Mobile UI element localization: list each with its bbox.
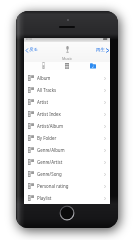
other: List view bbox=[65, 63, 69, 69]
other: Browse folders bbox=[90, 63, 96, 69]
staticText: Personal rating bbox=[37, 183, 69, 189]
button[interactable]: Artist Index bbox=[24, 108, 110, 120]
other: Home bbox=[59, 205, 75, 221]
button[interactable]: Artist/Album bbox=[24, 120, 110, 132]
button[interactable]: 戻る bbox=[26, 47, 38, 53]
other: Now playing device bbox=[66, 46, 69, 53]
staticText: 再生 bbox=[96, 47, 105, 53]
button[interactable]: Album bbox=[24, 72, 110, 84]
staticText: Artist/Album bbox=[37, 123, 64, 129]
button[interactable]: Device bbox=[42, 62, 45, 69]
button[interactable]: Genre/Album bbox=[24, 144, 110, 156]
button[interactable]: 再生 bbox=[96, 47, 109, 53]
staticText: Genre/Artist bbox=[37, 159, 63, 165]
button[interactable]: Browse folders bbox=[90, 63, 96, 69]
staticText: 戻る bbox=[29, 47, 38, 53]
other: Device bbox=[42, 62, 45, 69]
staticText: Genre/Song bbox=[37, 171, 62, 177]
button[interactable]: List view bbox=[65, 63, 69, 69]
staticText: Artist bbox=[37, 99, 49, 105]
staticText: By Folder bbox=[37, 135, 57, 141]
button[interactable]: Genre/Artist bbox=[24, 156, 110, 168]
button[interactable]: By Folder bbox=[24, 132, 110, 144]
staticText: Album bbox=[37, 75, 51, 81]
staticText: Playlist bbox=[37, 195, 52, 201]
staticText: All Tracks bbox=[37, 87, 57, 93]
staticText: Genre/Album bbox=[37, 147, 65, 153]
button[interactable]: Playlist bbox=[24, 192, 110, 204]
button[interactable]: Genre/Song bbox=[24, 168, 110, 180]
staticText: Music bbox=[62, 56, 73, 61]
button[interactable]: Personal rating bbox=[24, 180, 110, 192]
staticText: Artist Index bbox=[37, 111, 61, 117]
button[interactable]: All Tracks bbox=[24, 84, 110, 96]
button[interactable]: Artist bbox=[24, 96, 110, 108]
